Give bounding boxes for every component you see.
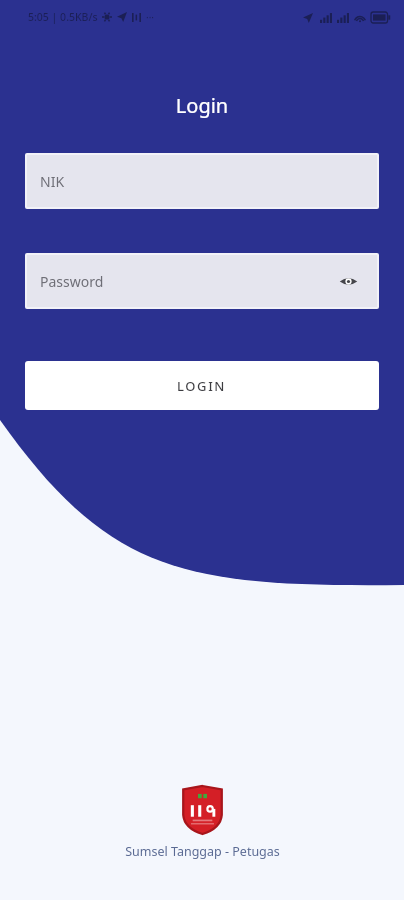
staticText: Sumsel Tanggap - Petugas — [125, 843, 280, 860]
staticText: ··· — [146, 10, 155, 24]
button[interactable]: LOGIN — [25, 361, 379, 410]
staticText: LOGIN — [177, 377, 227, 395]
staticText: NIK — [40, 172, 65, 191]
staticText: 5:05 | 0.5KB/s — [28, 10, 98, 24]
button[interactable]: NIK — [27, 155, 377, 207]
button[interactable]: Show password — [333, 266, 363, 296]
staticText: Login — [0, 92, 404, 119]
staticText: Password — [40, 272, 104, 291]
button[interactable]: Password — [27, 255, 377, 307]
